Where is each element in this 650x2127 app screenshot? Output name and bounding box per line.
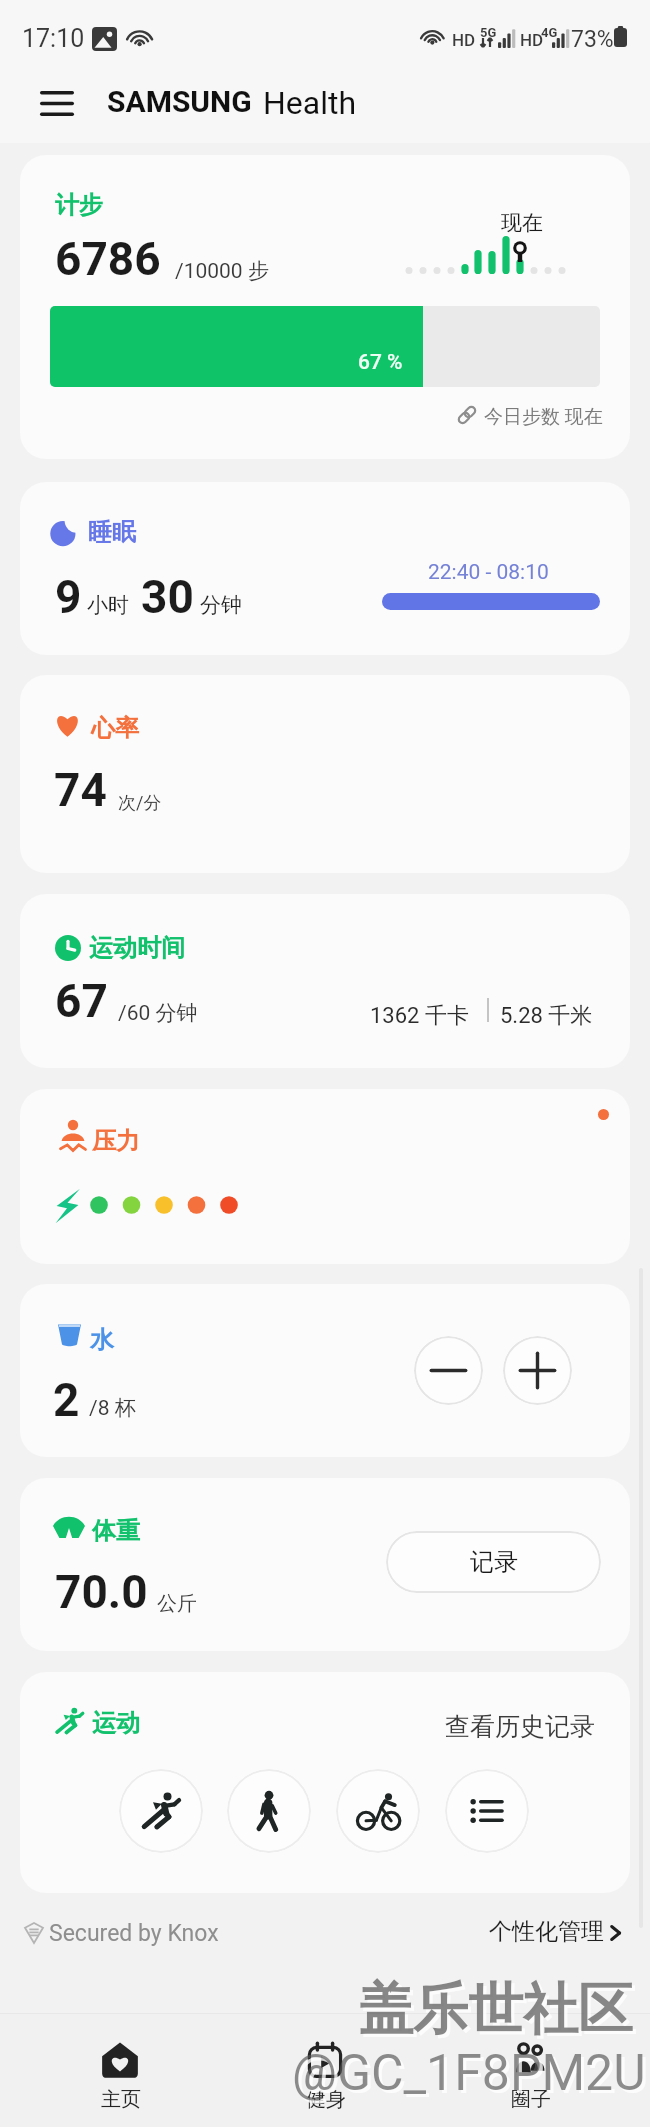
staticText: @GC_1F8PM2U	[295, 2047, 649, 2106]
staticText: /60 分钟	[118, 1000, 198, 1026]
staticText: 74	[54, 763, 107, 817]
staticText: 73%	[571, 26, 614, 53]
button[interactable]: 睡眠	[20, 482, 630, 655]
button[interactable]: 运动时间	[20, 894, 630, 1068]
staticText: 5.28 千米	[500, 1002, 593, 1030]
staticText: /8 杯	[89, 1395, 136, 1421]
staticText: 公斤	[157, 1591, 197, 1616]
staticText: 现在	[501, 210, 543, 236]
staticText: 个性化管理	[489, 1917, 604, 1946]
staticText: 9	[55, 570, 82, 624]
staticText: 主页	[101, 2087, 141, 2112]
staticText: 5G	[480, 25, 497, 40]
staticText: Health	[263, 84, 357, 122]
staticText: 1362 千卡	[370, 1002, 469, 1030]
staticText: 体重	[92, 1516, 140, 1546]
staticText: 健身	[306, 2087, 346, 2112]
button[interactable]: 计步	[20, 155, 630, 459]
button[interactable]: Increase water	[503, 1336, 572, 1405]
staticText: 30	[141, 570, 194, 624]
button[interactable]: 运动	[20, 1672, 630, 1893]
staticText: HD	[452, 30, 476, 50]
staticText: /10000 步	[175, 258, 269, 284]
staticText: 心率	[91, 713, 139, 743]
staticText: 运动时间	[89, 933, 185, 963]
button[interactable]: 记录	[386, 1531, 601, 1593]
staticText: 记录	[470, 1547, 518, 1577]
staticText: 17:10	[22, 24, 85, 53]
staticText: 水	[90, 1325, 114, 1355]
button[interactable]: Running	[119, 1769, 203, 1853]
button[interactable]: 主页	[60, 2023, 180, 2123]
staticText: 今日步数 现在	[484, 405, 603, 429]
button[interactable]: More workouts	[445, 1769, 529, 1853]
button[interactable]: 体重	[20, 1478, 630, 1651]
staticText: 4G	[541, 25, 558, 40]
button[interactable]: 圈子	[470, 2023, 590, 2123]
staticText: 6786	[55, 232, 161, 286]
staticText: 睡眠	[88, 517, 136, 547]
staticText: 分钟	[200, 592, 242, 618]
button[interactable]: 水	[20, 1284, 630, 1457]
staticText: 67 %	[358, 350, 403, 375]
staticText: 2	[53, 1373, 80, 1427]
button[interactable]: 压力	[20, 1089, 630, 1264]
button[interactable]	[480, 1905, 640, 1957]
button[interactable]: Walking	[227, 1769, 311, 1853]
staticText: 计步	[55, 190, 103, 220]
staticText: SAMSUNG	[107, 84, 252, 119]
staticText: 次/分	[118, 792, 162, 815]
staticText: Secured by Knox	[49, 1920, 219, 1947]
staticText: 70.0	[55, 1565, 148, 1619]
staticText: 盖乐世社区	[358, 1975, 633, 2044]
staticText: 压力	[92, 1126, 140, 1156]
staticText: 圈子	[511, 2087, 551, 2112]
staticText: @GC_1F8PM2U	[292, 2044, 646, 2103]
staticText: 小时	[87, 592, 129, 618]
button[interactable]: 查看历史记录	[445, 1711, 595, 1742]
staticText: 67	[55, 974, 108, 1028]
button[interactable]: Menu	[28, 74, 86, 132]
staticText: 运动	[92, 1708, 140, 1738]
staticText: HD	[520, 30, 544, 50]
button[interactable]: 健身	[265, 2023, 385, 2123]
button[interactable]: Decrease water	[414, 1336, 483, 1405]
button[interactable]: 心率	[20, 675, 630, 873]
staticText: 盖乐世社区	[361, 1978, 636, 2047]
button[interactable]: Cycling	[336, 1769, 420, 1853]
staticText: 22:40 - 08:10	[428, 560, 549, 585]
